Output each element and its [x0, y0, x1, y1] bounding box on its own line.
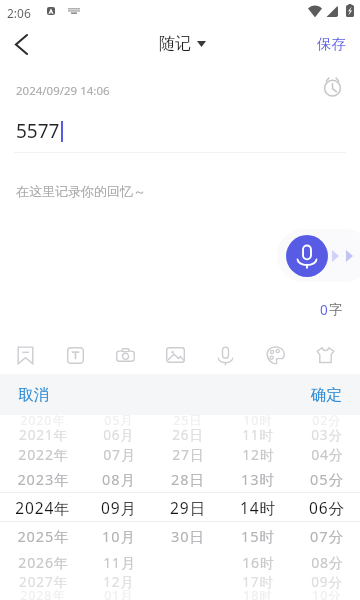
staticText: 0: [320, 301, 328, 319]
staticText: 06分: [309, 497, 345, 518]
button[interactable]: Image: [150, 336, 200, 374]
staticText: 04分: [311, 445, 344, 464]
staticText: 2026年: [18, 553, 69, 572]
staticText: 18时: [243, 587, 273, 600]
staticText: 5577: [16, 118, 60, 144]
staticText: 29日: [170, 497, 206, 518]
button[interactable]: Theme: [250, 336, 300, 374]
staticText: 16时: [242, 553, 275, 572]
staticText: 26日: [172, 426, 204, 444]
staticText: 01月: [104, 587, 134, 600]
staticText: 2023年: [17, 469, 70, 489]
staticText: 09月: [101, 497, 137, 518]
staticText: 字: [329, 301, 343, 318]
staticText: 在这里记录你的回忆～: [16, 183, 146, 199]
button[interactable]: 取消: [0, 375, 67, 415]
staticText: 11月: [103, 553, 136, 572]
staticText: 05分: [310, 469, 344, 489]
staticText: 11时: [242, 426, 274, 444]
staticText: 14时: [240, 497, 276, 518]
staticText: 27日: [172, 445, 205, 464]
staticText: 05月: [104, 412, 134, 429]
staticText: 09分: [311, 573, 343, 591]
staticText: 10月: [102, 526, 136, 546]
button[interactable]: 确定: [293, 375, 360, 415]
staticText: 08分: [311, 553, 344, 572]
button[interactable]: Camera: [100, 336, 150, 374]
button[interactable]: Text style: [50, 336, 100, 374]
staticText: 2:06: [7, 5, 31, 21]
staticText: 确定: [311, 385, 342, 405]
staticText: 12月: [103, 573, 135, 591]
staticText: 2027年: [19, 573, 68, 591]
staticText: 12时: [242, 445, 275, 464]
staticText: 25日: [173, 412, 203, 429]
button[interactable]: Sticker: [300, 336, 350, 374]
button[interactable]: Record: [200, 336, 250, 374]
button[interactable]: Reminder: [318, 72, 346, 100]
button[interactable]: Voice input: [286, 235, 328, 277]
button[interactable]: Back: [0, 26, 42, 62]
staticText: 2024/09/29 14:06: [16, 83, 110, 99]
staticText: 17时: [242, 573, 274, 591]
button[interactable]: 随记: [159, 34, 206, 54]
staticText: 02分: [312, 412, 342, 429]
staticText: 07月: [103, 445, 136, 464]
staticText: 28日: [171, 469, 205, 489]
staticText: 10时: [243, 412, 273, 429]
staticText: 保存: [317, 35, 346, 53]
staticText: 07分: [310, 526, 344, 546]
staticText: 随记: [159, 34, 191, 54]
staticText: 取消: [18, 385, 49, 405]
staticText: 2025年: [17, 526, 70, 546]
staticText: 15时: [241, 526, 275, 546]
staticText: 06月: [103, 426, 135, 444]
button[interactable]: 保存: [303, 28, 360, 60]
staticText: 2028年: [20, 587, 66, 600]
staticText: 08月: [102, 469, 136, 489]
staticText: 10分: [312, 587, 342, 600]
staticText: 13时: [241, 469, 275, 489]
staticText: 2022年: [18, 445, 69, 464]
staticText: 2024年: [15, 497, 71, 518]
staticText: 2021年: [19, 426, 68, 444]
staticText: 03分: [311, 426, 343, 444]
staticText: 30日: [171, 526, 205, 546]
staticText: 2020年: [20, 412, 66, 429]
button[interactable]: Tag: [0, 336, 50, 374]
